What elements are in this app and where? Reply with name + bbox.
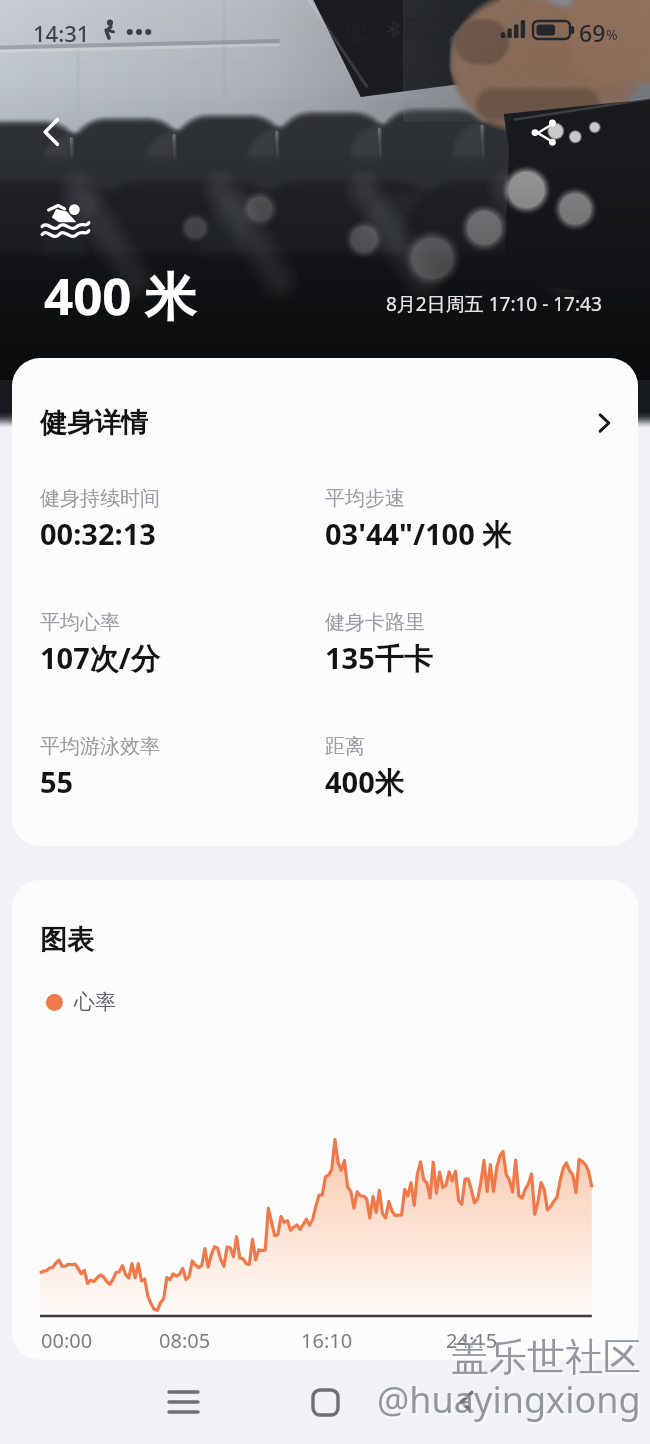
staticText: 107次/分 — [40, 638, 160, 678]
staticText: @huayingxiong — [379, 1377, 643, 1426]
button[interactable]: Recent apps — [149, 1360, 217, 1444]
staticText: 健身卡路里 — [325, 610, 425, 635]
staticText: 24:15 — [446, 1327, 498, 1354]
staticText: 00:00 — [41, 1327, 93, 1354]
staticText: 8月2日周五 17:10 - 17:43 — [386, 291, 602, 317]
staticText: 距离 — [325, 734, 365, 759]
staticText: 健身详情 — [40, 406, 148, 440]
staticText: @huayingxiong — [377, 1375, 641, 1424]
staticText: 图表 — [40, 923, 94, 957]
staticText: 健身持续时间 — [40, 486, 160, 511]
staticText: 16:10 — [301, 1327, 353, 1354]
staticText: 08:05 — [159, 1327, 211, 1354]
staticText: 平均步速 — [325, 486, 405, 511]
staticText: 135千卡 — [325, 638, 433, 678]
staticText: 69 — [579, 17, 606, 48]
staticText: 盖乐世社区 — [453, 1335, 643, 1383]
staticText: 55 — [40, 762, 74, 801]
staticText: 00:32:13 — [40, 514, 156, 553]
staticText: % — [606, 25, 618, 44]
button[interactable]: Back — [433, 1360, 501, 1444]
staticText: 4G — [438, 22, 455, 40]
button[interactable]: Back — [26, 106, 78, 158]
staticText: 14:31 — [33, 18, 90, 48]
button[interactable]: Share — [518, 106, 570, 158]
staticText: 03'44"/100 米 — [325, 514, 512, 554]
staticText: 盖乐世社区 — [451, 1333, 641, 1381]
staticText: 心率 — [74, 989, 116, 1015]
button[interactable]: Home — [291, 1360, 359, 1444]
staticText: 400 米 — [44, 260, 196, 330]
staticText: 400米 — [325, 762, 404, 802]
button[interactable]: 健身详情 — [40, 406, 616, 440]
staticText: 平均游泳效率 — [40, 734, 160, 759]
staticText: 平均心率 — [40, 610, 120, 635]
